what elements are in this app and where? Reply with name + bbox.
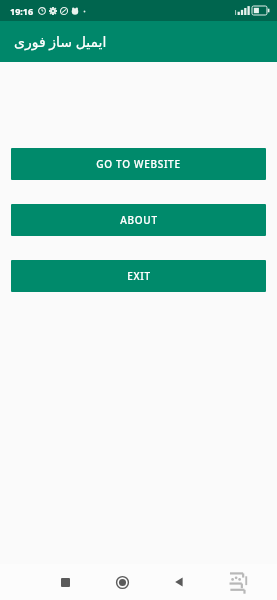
button[interactable]: EXIT: [11, 260, 266, 292]
button[interactable]: Back: [162, 565, 196, 599]
staticText: EXIT: [127, 269, 151, 283]
staticText: ایمیل ساز فوری: [14, 32, 107, 51]
button[interactable]: GO TO WEBSITE: [11, 148, 266, 180]
button[interactable]: Recent apps: [48, 565, 82, 599]
button[interactable]: Home: [105, 565, 139, 599]
staticText: ABOUT: [120, 213, 158, 227]
staticText: 19:16: [10, 5, 34, 17]
button[interactable]: ABOUT: [11, 204, 266, 236]
staticText: GO TO WEBSITE: [96, 157, 181, 171]
